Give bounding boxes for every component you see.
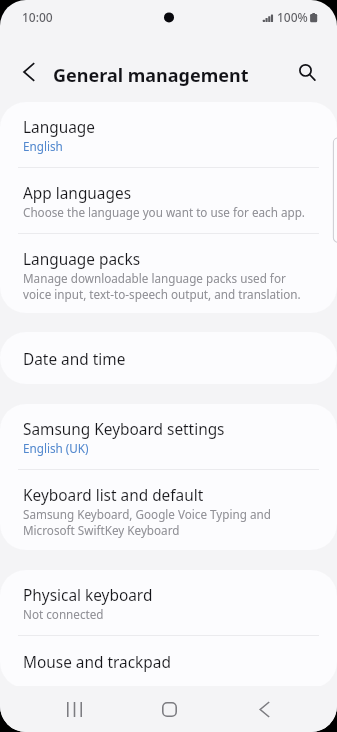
staticText: Language: [23, 117, 95, 138]
staticText: Manage downloadable language packs used …: [23, 270, 311, 302]
button[interactable]: Physical keyboard: [0, 570, 337, 636]
staticText: English (UK): [23, 440, 89, 456]
button[interactable]: Navigate up: [6, 40, 52, 86]
button[interactable]: Samsung Keyboard settings: [0, 404, 337, 470]
staticText: Samsung Keyboard, Google Voice Typing an…: [23, 506, 311, 538]
staticText: Language packs: [23, 249, 141, 270]
staticText: English: [23, 138, 63, 154]
button[interactable]: Search: [285, 40, 331, 86]
button[interactable]: Language: [0, 102, 337, 168]
staticText: Samsung Keyboard settings: [23, 419, 225, 440]
staticText: Keyboard list and default: [23, 485, 204, 506]
button[interactable]: Date and time: [0, 332, 337, 384]
staticText: Not connected: [23, 606, 104, 622]
button[interactable]: Recent apps: [46, 686, 103, 732]
staticText: Physical keyboard: [23, 585, 153, 606]
button[interactable]: App languages: [0, 168, 337, 234]
staticText: Date and time: [23, 349, 126, 370]
staticText: 10:00: [22, 9, 53, 25]
staticText: 100%: [277, 9, 308, 25]
staticText: General management: [53, 63, 249, 88]
staticText: App languages: [23, 183, 132, 204]
button[interactable]: Home: [141, 686, 198, 732]
button[interactable]: Keyboard list and default: [0, 470, 337, 550]
staticText: Mouse and trackpad: [23, 652, 171, 673]
button[interactable]: Mouse and trackpad: [0, 636, 337, 688]
button[interactable]: Back: [235, 686, 292, 732]
button[interactable]: Language packs: [0, 234, 337, 313]
staticText: Choose the language you want to use for …: [23, 204, 305, 220]
